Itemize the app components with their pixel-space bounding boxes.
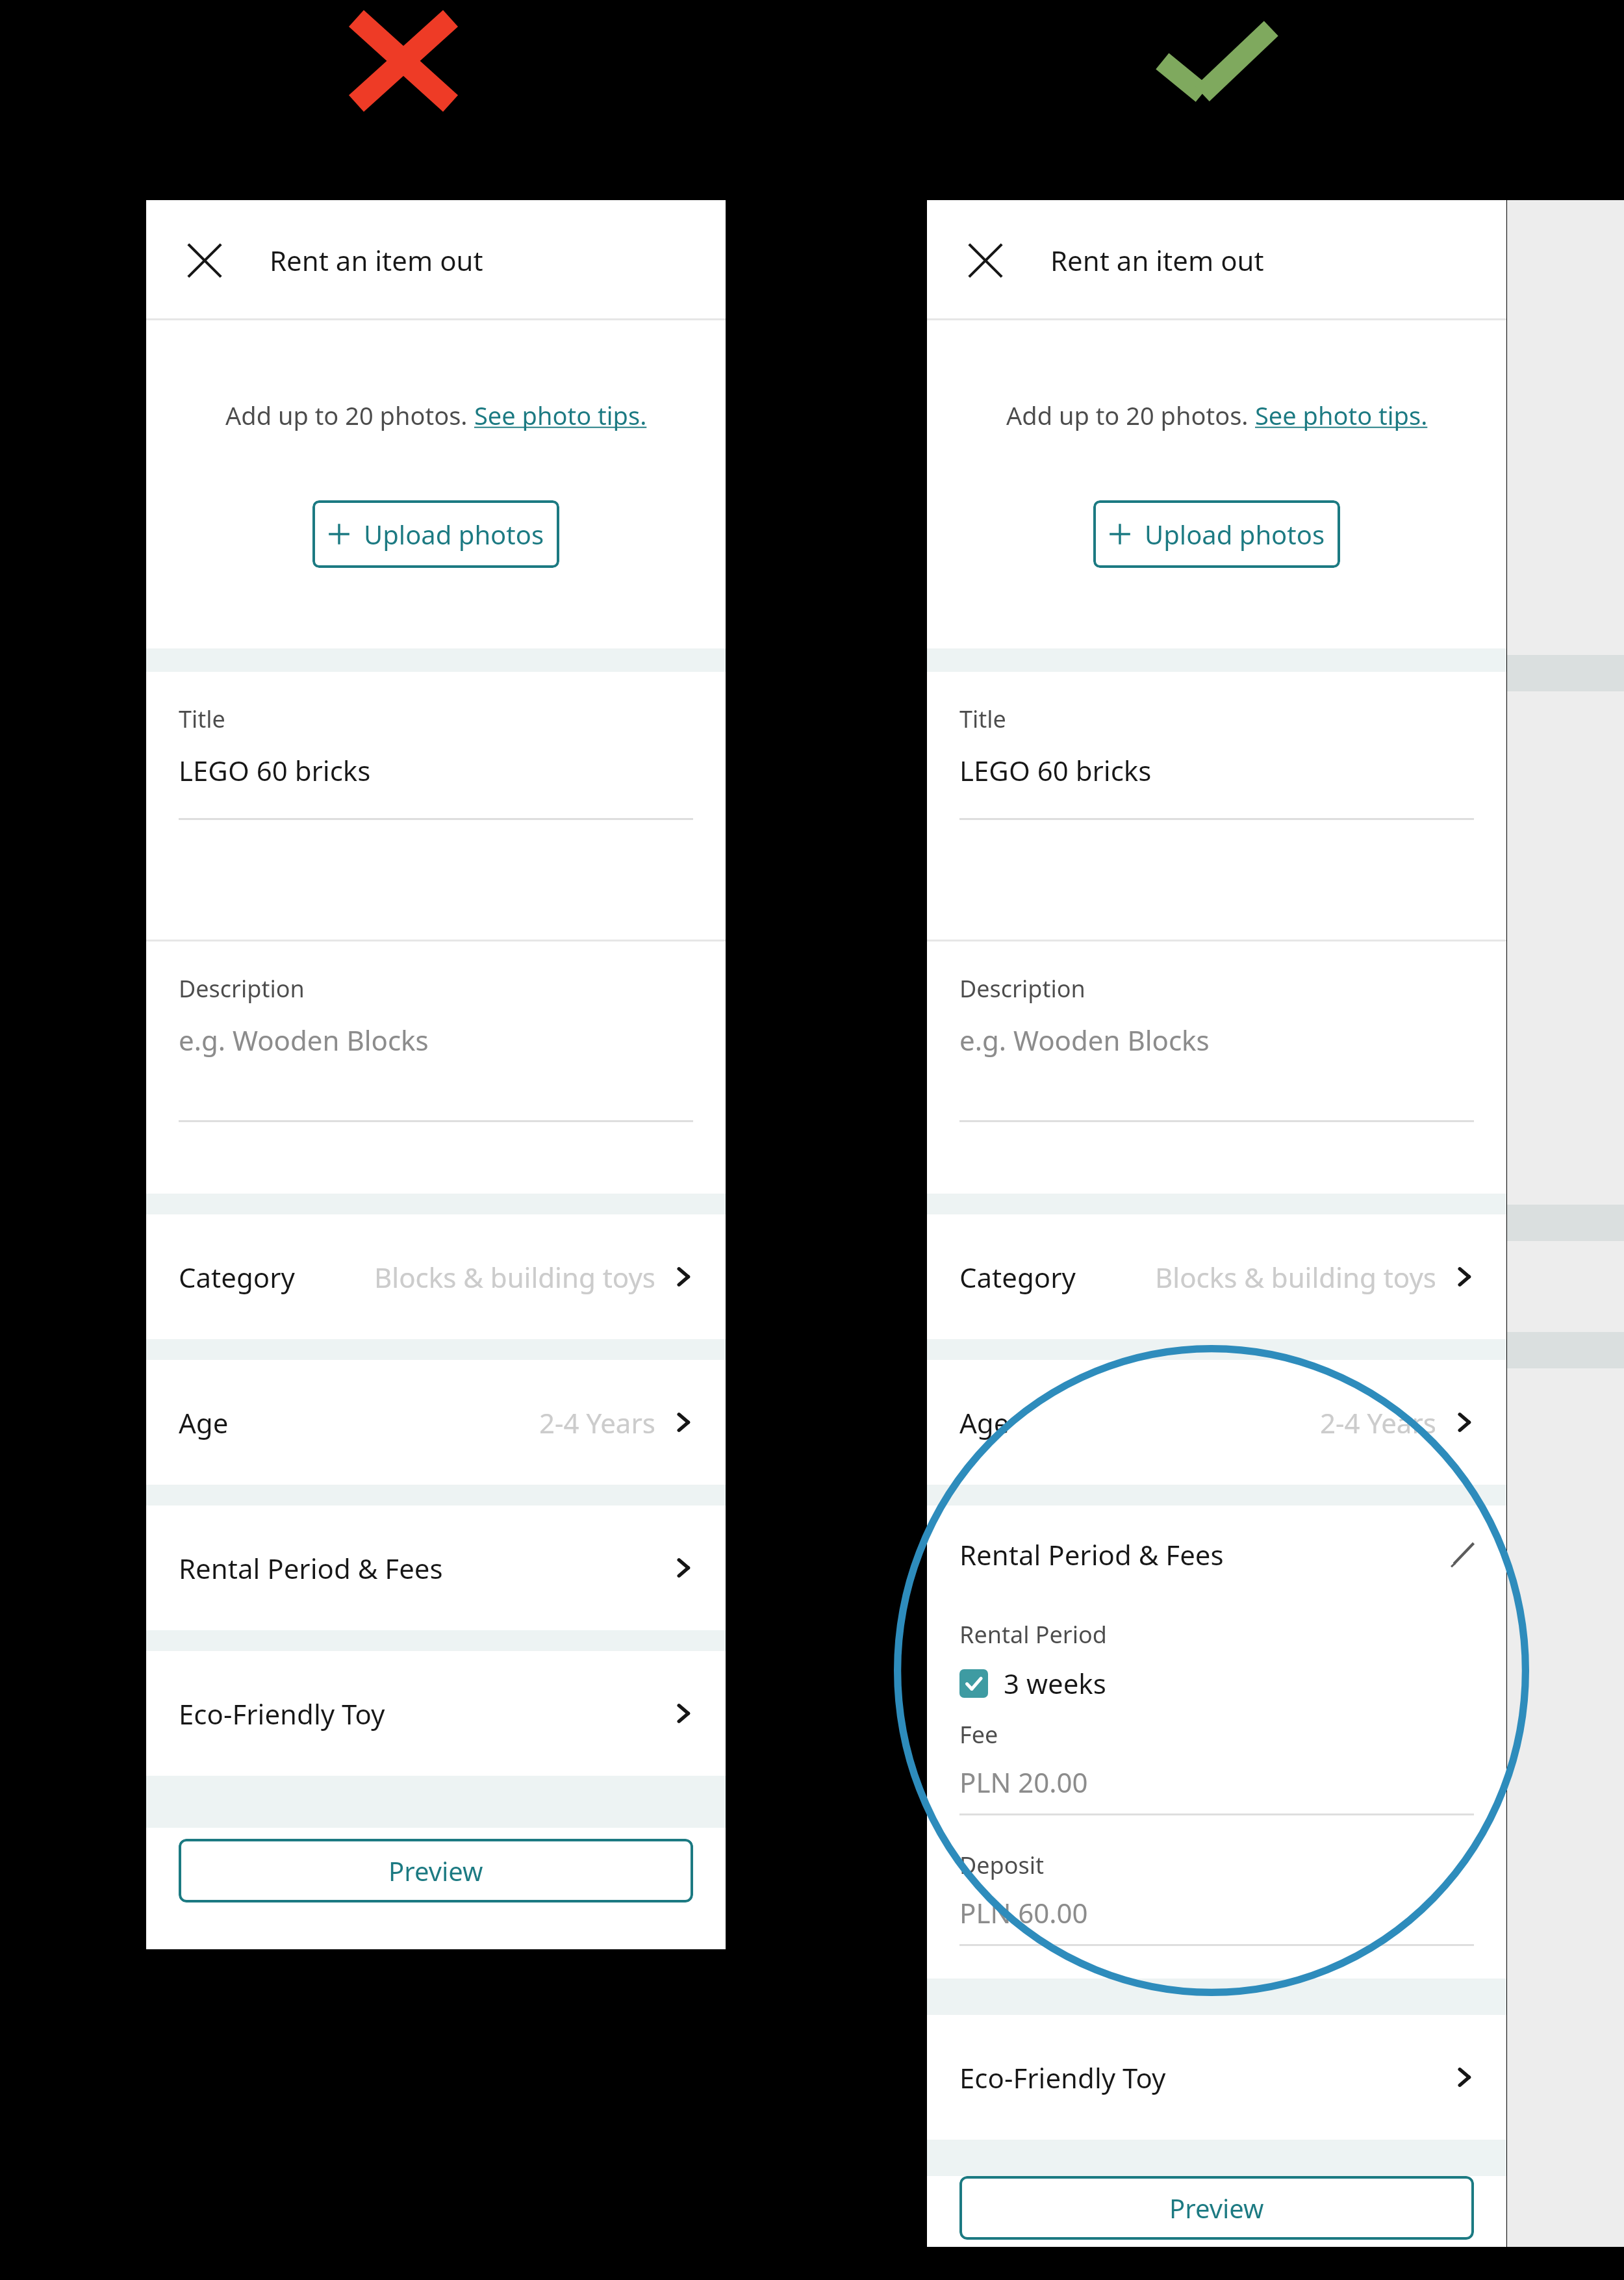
button[interactable]: 3 weeks xyxy=(959,1665,1106,1702)
staticText: Preview xyxy=(388,1853,483,1888)
staticText: Title xyxy=(959,703,1006,735)
staticText: LEGO 60 bricks xyxy=(959,752,1152,789)
staticText: Age xyxy=(959,1404,1009,1441)
staticText: Deposit xyxy=(959,1849,1045,1881)
staticText: Description xyxy=(959,973,1085,1005)
button[interactable]: Rental Period & Fees xyxy=(146,1505,726,1630)
button[interactable]: Description xyxy=(927,941,1506,1194)
button[interactable]: See photo tips. xyxy=(474,398,647,432)
button[interactable]: See photo tips. xyxy=(1255,398,1428,432)
staticText: 3 weeks xyxy=(1004,1665,1106,1702)
staticText: Fee xyxy=(959,1719,998,1750)
button[interactable]: Rental Period & Fees xyxy=(927,1505,1506,1603)
staticText: Blocks & building toys xyxy=(374,1259,655,1296)
staticText: See photo tips. xyxy=(474,398,647,432)
staticText: Upload photos xyxy=(1145,517,1325,552)
staticText: LEGO 60 bricks xyxy=(179,752,371,789)
staticText: Add up to 20 photos. xyxy=(1006,398,1255,432)
button[interactable]: Category xyxy=(146,1214,726,1339)
button[interactable]: Title xyxy=(146,672,726,940)
staticText: Category xyxy=(179,1259,295,1296)
staticText: PLN 60.00 xyxy=(959,1894,1088,1931)
staticText: Blocks & building toys xyxy=(1155,1259,1436,1296)
staticText: Preview xyxy=(1169,2190,1264,2225)
button[interactable]: Close xyxy=(179,235,231,287)
staticText: Rental Period & Fees xyxy=(959,1536,1224,1573)
staticText: Category xyxy=(959,1259,1076,1296)
button[interactable]: Title xyxy=(927,672,1506,940)
button[interactable]: Eco-Friendly Toy xyxy=(927,2015,1506,2140)
button[interactable]: Age xyxy=(146,1360,726,1485)
staticText: Eco-Friendly Toy xyxy=(959,2059,1166,2096)
button[interactable]: Preview xyxy=(179,1839,693,1902)
staticText: Rent an item out xyxy=(270,242,483,279)
staticText: 2-4 Years xyxy=(539,1404,655,1441)
button[interactable]: Preview xyxy=(959,2176,1474,2240)
button[interactable]: Description xyxy=(146,941,726,1194)
staticText: See photo tips. xyxy=(1255,398,1428,432)
staticText: Add up to 20 photos. xyxy=(225,398,474,432)
staticText: PLN 20.00 xyxy=(959,1763,1088,1800)
staticText: Upload photos xyxy=(364,517,544,552)
staticText: Rental Period xyxy=(959,1619,1107,1650)
staticText: e.g. Wooden Blocks xyxy=(179,1021,429,1058)
button[interactable]: Category xyxy=(927,1214,1506,1339)
staticText: e.g. Wooden Blocks xyxy=(959,1021,1210,1058)
staticText: 2-4 Years xyxy=(1320,1404,1436,1441)
other: Edit xyxy=(1448,1539,1478,1569)
button[interactable]: Age xyxy=(927,1360,1506,1485)
staticText: Eco-Friendly Toy xyxy=(179,1695,385,1732)
staticText: Age xyxy=(179,1404,229,1441)
button[interactable]: Upload photos xyxy=(312,500,559,568)
staticText: Rent an item out xyxy=(1050,242,1264,279)
button[interactable]: Upload photos xyxy=(1093,500,1340,568)
staticText: Description xyxy=(179,973,305,1005)
staticText: Title xyxy=(179,703,225,735)
button[interactable]: Eco-Friendly Toy xyxy=(146,1651,726,1776)
staticText: Rental Period & Fees xyxy=(179,1550,443,1587)
button[interactable]: Close xyxy=(959,235,1011,287)
